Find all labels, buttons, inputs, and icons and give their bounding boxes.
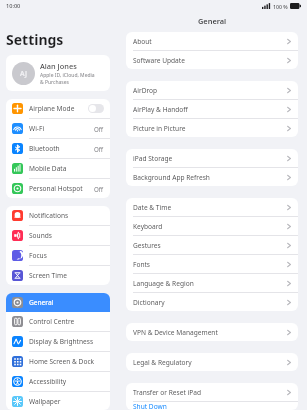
staticText: Off — [94, 185, 104, 193]
staticText: Airplane Mode — [29, 104, 88, 113]
other: Screen Time — [12, 270, 23, 281]
button[interactable]: About — [126, 32, 298, 50]
button[interactable]: Dictionary — [126, 293, 298, 311]
staticText: Legal & Regulatory — [133, 358, 287, 367]
button[interactable]: Wi-Fi — [6, 119, 110, 138]
staticText: About — [133, 37, 287, 46]
other: Display & Brightness — [12, 336, 23, 347]
button[interactable]: Notifications — [6, 206, 110, 225]
staticText: 100 % — [273, 3, 288, 10]
button[interactable]: Transfer or Reset iPad — [126, 383, 298, 401]
other: Bluetooth — [12, 143, 23, 154]
staticText: Off — [94, 125, 104, 133]
staticText: Sounds — [29, 231, 104, 240]
staticText: Language & Region — [133, 279, 287, 288]
button[interactable]: Background App Refresh — [126, 168, 298, 186]
button[interactable]: Bluetooth — [6, 139, 110, 158]
button[interactable]: AirPlay & Handoff — [126, 100, 298, 118]
staticText: Screen Time — [29, 271, 104, 280]
staticText: Picture in Picture — [133, 124, 287, 133]
staticText: Display & Brightness — [29, 337, 104, 346]
staticText: Software Update — [133, 56, 287, 65]
button[interactable]: AirDrop — [126, 81, 298, 99]
staticText: Wi-Fi — [29, 124, 94, 133]
staticText: Fonts — [133, 260, 287, 269]
button[interactable]: Legal & Regulatory — [126, 353, 298, 371]
staticText: AJ — [20, 69, 27, 79]
other: Focus — [12, 250, 23, 261]
button[interactable]: Home Screen & Dock — [6, 352, 110, 371]
button[interactable]: Fonts — [126, 255, 298, 273]
button[interactable]: Focus — [6, 246, 110, 265]
staticText: General — [198, 16, 227, 26]
button[interactable]: Picture in Picture — [126, 119, 298, 137]
other: Accessibility — [12, 376, 23, 387]
staticText: Focus — [29, 251, 104, 260]
staticText: Shut Down — [133, 402, 291, 410]
button[interactable]: AJ — [6, 55, 110, 91]
other: Wallpaper — [12, 396, 23, 407]
staticText: Accessibility — [29, 377, 104, 386]
staticText: Home Screen & Dock — [29, 357, 104, 366]
button[interactable]: Wallpaper — [6, 392, 110, 410]
staticText: AirPlay & Handoff — [133, 105, 287, 114]
staticText: Off — [94, 145, 104, 153]
button[interactable]: Screen Time — [6, 266, 110, 285]
staticText: Apple ID, iCloud, Media & Purchases — [40, 72, 95, 85]
staticText: General — [29, 298, 104, 307]
staticText: Transfer or Reset iPad — [133, 388, 287, 397]
staticText: VPN & Device Management — [133, 328, 287, 337]
button[interactable]: Date & Time — [126, 198, 298, 216]
button[interactable]: General — [6, 293, 110, 312]
button[interactable]: Airplane Mode — [6, 99, 110, 118]
staticText: Wallpaper — [29, 397, 104, 406]
other: Airplane Mode — [12, 103, 23, 114]
staticText: Gestures — [133, 241, 287, 250]
other: Personal Hotspot — [12, 183, 23, 194]
other: Wi-Fi — [12, 123, 23, 134]
staticText: iPad Storage — [133, 154, 287, 163]
button[interactable]: Display & Brightness — [6, 332, 110, 351]
button[interactable]: Control Centre — [6, 312, 110, 331]
other: General — [12, 297, 23, 308]
button[interactable]: Software Update — [126, 51, 298, 69]
other: Control Centre — [12, 316, 23, 327]
staticText: Personal Hotspot — [29, 184, 94, 193]
other: Notifications — [12, 210, 23, 221]
other: Mobile Data — [12, 163, 23, 174]
button[interactable]: Language & Region — [126, 274, 298, 292]
button[interactable]: Mobile Data — [6, 159, 110, 178]
button[interactable]: Shut Down — [126, 402, 298, 410]
staticText: Dictionary — [133, 298, 287, 307]
staticText: Control Centre — [29, 317, 104, 326]
staticText: Alan Jones — [40, 61, 77, 71]
button[interactable]: Personal Hotspot — [6, 179, 110, 198]
staticText: Date & Time — [133, 203, 287, 212]
button[interactable]: iPad Storage — [126, 149, 298, 167]
staticText: Bluetooth — [29, 144, 94, 153]
staticText: Mobile Data — [29, 164, 104, 173]
staticText: Settings — [6, 30, 64, 49]
button[interactable]: VPN & Device Management — [126, 323, 298, 341]
button[interactable]: Airplane Mode toggle — [88, 104, 104, 113]
staticText: Keyboard — [133, 222, 287, 231]
staticText: AirDrop — [133, 86, 287, 95]
other: Home Screen & Dock — [12, 356, 23, 367]
other: Sounds — [12, 230, 23, 241]
staticText: Background App Refresh — [133, 173, 287, 182]
button[interactable]: Gestures — [126, 236, 298, 254]
button[interactable]: Sounds — [6, 226, 110, 245]
button[interactable]: Accessibility — [6, 372, 110, 391]
staticText: Notifications — [29, 211, 104, 220]
staticText: 10:00 — [6, 2, 21, 10]
button[interactable]: Keyboard — [126, 217, 298, 235]
